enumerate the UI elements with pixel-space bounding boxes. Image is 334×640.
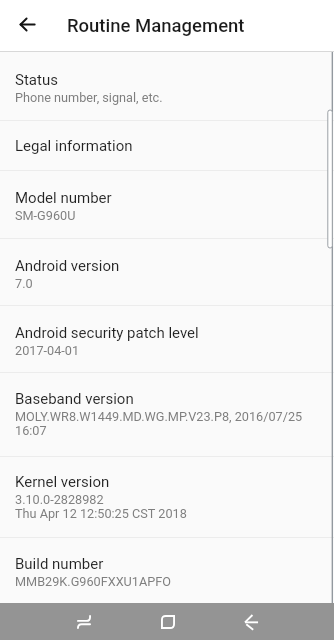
button[interactable]: Recent apps bbox=[58, 603, 109, 640]
button[interactable]: Build number bbox=[0, 538, 334, 603]
button[interactable]: Model number bbox=[0, 171, 334, 239]
staticText: MOLY.WR8.W1449.MD.WG.MP.V23.P8, 2016/07/… bbox=[15, 409, 303, 439]
button[interactable]: Kernel version bbox=[0, 457, 334, 538]
button[interactable]: Status bbox=[0, 52, 334, 121]
staticText: Android security patch level bbox=[15, 324, 199, 342]
button[interactable]: Baseband version bbox=[0, 373, 334, 457]
staticText: Kernel version bbox=[15, 473, 110, 491]
staticText: Routine Management bbox=[67, 15, 245, 37]
staticText: 2017-04-01 bbox=[15, 343, 80, 358]
button[interactable]: Navigate up bbox=[0, 0, 52, 51]
staticText: Baseband version bbox=[15, 390, 134, 408]
staticText: Build number bbox=[15, 555, 104, 573]
staticText: Android version bbox=[15, 257, 120, 275]
staticText: Status bbox=[15, 71, 58, 89]
button[interactable]: Android security patch level bbox=[0, 306, 334, 373]
staticText: Legal information bbox=[15, 137, 133, 155]
staticText: Model number bbox=[15, 189, 112, 207]
button[interactable]: Legal information bbox=[0, 121, 334, 171]
staticText: SM-G960U bbox=[15, 208, 76, 223]
button[interactable]: Back bbox=[226, 603, 277, 640]
staticText: MMB29K.G960FXXU1APFO bbox=[15, 574, 171, 589]
button[interactable]: Home bbox=[142, 603, 193, 640]
staticText: 7.0 bbox=[15, 276, 33, 291]
staticText: 3.10.0-2828982 Thu Apr 12 12:50:25 CST 2… bbox=[15, 492, 187, 522]
staticText: Phone number, signal, etc. bbox=[15, 90, 163, 105]
button[interactable]: Android version bbox=[0, 239, 334, 306]
